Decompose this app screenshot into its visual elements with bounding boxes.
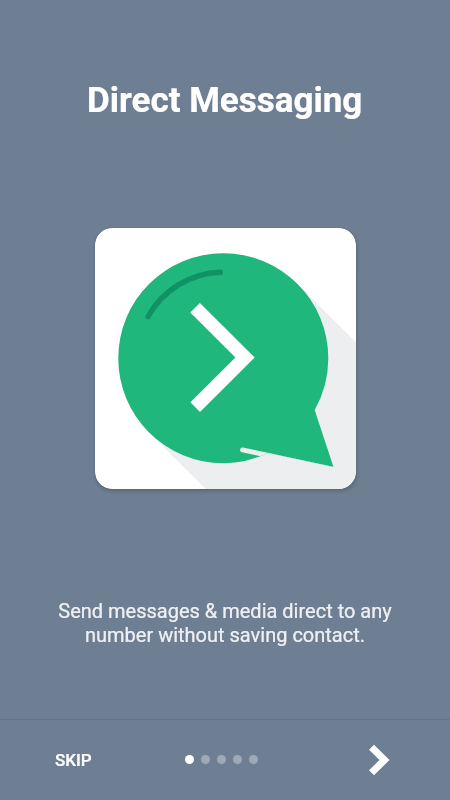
button[interactable]: Next xyxy=(354,736,402,784)
staticText: SKIP xyxy=(55,750,92,770)
staticText: Direct Messaging xyxy=(87,80,363,121)
staticText: Send messages & media direct to any numb… xyxy=(45,599,405,647)
button[interactable]: SKIP xyxy=(39,736,108,784)
